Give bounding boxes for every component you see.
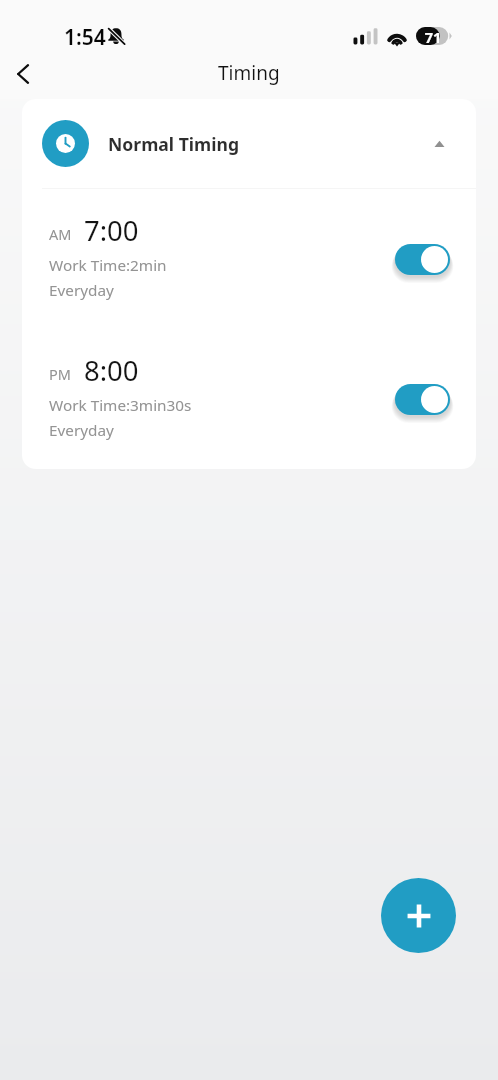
button[interactable]: AM	[22, 189, 476, 329]
staticText: 8:00	[84, 352, 139, 389]
staticText: 71	[421, 27, 445, 47]
staticText: Everyday	[49, 280, 114, 301]
button[interactable]: Toggle alarm	[395, 244, 450, 275]
staticText: Everyday	[49, 420, 114, 441]
staticText: 1:54	[64, 23, 106, 52]
staticText: PM	[49, 364, 71, 384]
button[interactable]: PM	[22, 329, 476, 469]
button[interactable]: Normal Timing	[22, 99, 476, 188]
staticText: Normal Timing	[108, 132, 240, 156]
button[interactable]: Back	[3, 54, 43, 94]
button[interactable]: Toggle alarm	[395, 384, 450, 415]
button[interactable]: Add timing	[381, 878, 456, 953]
staticText: Timing	[218, 60, 280, 86]
staticText: AM	[49, 224, 72, 244]
staticText: Work Time:3min30s	[49, 395, 192, 416]
staticText: 7:00	[84, 212, 139, 249]
staticText: Work Time:2min	[49, 255, 167, 276]
